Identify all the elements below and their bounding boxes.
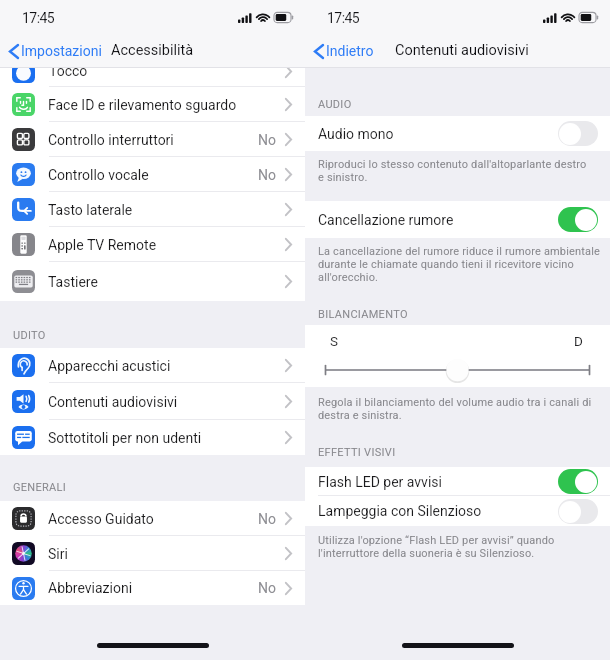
staticText: Sottotitoli per non udenti — [48, 430, 202, 446]
button[interactable]: Accesso Guidato — [0, 501, 305, 536]
staticText: Riproduci lo stesso contenuto dall'altop… — [318, 158, 587, 171]
staticText: durante le chiamate quando tieni il rice… — [318, 258, 574, 271]
staticText: Contenuti audiovisivi — [48, 394, 178, 410]
button[interactable]: Impostazioni — [0, 39, 107, 63]
button[interactable]: Lampeggia con Silenzioso — [305, 496, 610, 526]
staticText: S — [330, 333, 339, 349]
button[interactable]: Flash LED per avvisi — [305, 467, 610, 496]
button[interactable]: Controllo interruttori — [0, 122, 305, 157]
staticText: Tastiere — [48, 274, 98, 290]
button[interactable]: Cancellazione rumore — [305, 201, 610, 238]
button[interactable]: Abbreviazioni — [0, 571, 305, 605]
staticText: GENERALI — [13, 481, 67, 494]
staticText: l'interruttore della suoneria è su Silen… — [318, 547, 535, 560]
staticText: Flash LED per avvisi — [318, 474, 442, 490]
button[interactable]: Face ID e rilevamento sguardo — [0, 87, 305, 122]
staticText: No — [258, 167, 276, 183]
staticText: e sinistro. — [318, 171, 368, 184]
staticText: No — [258, 511, 276, 527]
staticText: EFFETTI VISIVI — [318, 446, 396, 459]
staticText: destra e sinistra. — [318, 409, 402, 422]
staticText: Face ID e rilevamento sguardo — [48, 97, 237, 113]
staticText: Cancellazione rumore — [318, 212, 454, 228]
button[interactable]: Controllo vocale — [0, 157, 305, 192]
staticText: Contenuti audiovisivi — [395, 42, 529, 59]
staticText: No — [258, 132, 276, 148]
staticText: UDITO — [13, 329, 46, 342]
staticText: Tasto laterale — [48, 202, 133, 218]
staticText: Apparecchi acustici — [48, 358, 171, 374]
staticText: Controllo interruttori — [48, 132, 174, 148]
staticText: D — [574, 333, 583, 349]
staticText: Accessibilità — [111, 42, 194, 59]
staticText: Abbreviazioni — [48, 580, 133, 596]
staticText: 17:45 — [327, 10, 360, 26]
button[interactable]: Apparecchi acustici — [0, 348, 305, 383]
staticText: Siri — [48, 546, 68, 562]
staticText: Impostazioni — [21, 43, 102, 59]
staticText: La cancellazione del rumore riduce il ru… — [318, 245, 601, 258]
staticText: Tocco — [49, 68, 88, 79]
button[interactable]: Siri — [0, 536, 305, 571]
staticText: No — [258, 580, 276, 596]
button[interactable]: Sottotitoli per non udenti — [0, 420, 305, 455]
staticText: Controllo vocale — [48, 167, 149, 183]
staticText: all'orecchio. — [318, 271, 379, 284]
staticText: BILANCIAMENTO — [318, 308, 408, 321]
staticText: Apple TV Remote — [48, 237, 157, 253]
button[interactable]: Contenuti audiovisivi — [0, 383, 305, 420]
staticText: 17:45 — [22, 10, 55, 26]
button[interactable]: Tasto laterale — [0, 192, 305, 227]
button[interactable]: Tocco — [0, 68, 305, 87]
button[interactable]: Tastiere — [0, 262, 305, 301]
staticText: Accesso Guidato — [48, 511, 154, 527]
staticText: Audio mono — [318, 126, 394, 142]
staticText: AUDIO — [318, 98, 352, 111]
button[interactable]: Indietro — [305, 39, 379, 63]
button[interactable]: Audio mono — [305, 116, 610, 151]
staticText: Regola il bilanciamento del volume audio… — [318, 396, 592, 409]
button[interactable]: Apple TV Remote — [0, 227, 305, 262]
staticText: Indietro — [326, 43, 374, 59]
staticText: Utilizza l'opzione “Flash LED per avvisi… — [318, 534, 555, 547]
staticText: Lampeggia con Silenzioso — [318, 503, 482, 519]
